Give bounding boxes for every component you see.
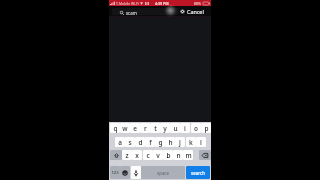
button[interactable]: Delete [199,150,211,160]
button[interactable]: Clear search [180,6,204,16]
staticText: p [204,124,209,133]
button[interactable]: x [132,150,142,160]
button[interactable]: i [180,123,190,133]
button[interactable]: Emoji [120,166,130,179]
button[interactable]: space [141,166,185,179]
staticText: i [184,124,186,133]
button[interactable]: m [183,150,193,160]
staticText: t [154,124,157,133]
staticText: e [133,124,137,133]
button[interactable]: scam [112,8,179,15]
button[interactable]: b [163,150,173,160]
staticText: q [113,124,118,133]
staticText: h [168,138,173,147]
button[interactable]: p [201,123,211,133]
staticText: w [122,124,128,133]
staticText: z [125,151,129,160]
button[interactable]: g [155,137,165,147]
button[interactable]: j [175,137,185,147]
button[interactable]: v [153,150,163,160]
staticText: y [163,124,167,133]
staticText: d [138,138,143,147]
staticText: search [191,170,205,176]
button[interactable]: t [150,123,160,133]
button[interactable]: h [165,137,175,147]
staticText: o [194,124,198,133]
staticText: j [179,138,181,147]
staticText: 88% [194,1,201,6]
button[interactable]: r [140,123,150,133]
staticText: r [144,124,147,133]
staticText: Cancel [187,8,204,15]
button[interactable]: e [130,123,140,133]
staticText: 4:39 PM [155,1,169,6]
staticText: b [166,151,171,160]
staticText: k [189,138,193,147]
staticText: T-Mobile Wi-Fi [116,1,140,6]
staticText: g [158,138,163,147]
staticText: x [135,151,139,160]
button[interactable]: y [160,123,170,133]
button[interactable]: Shift [110,150,122,160]
staticText: scam [126,10,137,15]
button[interactable]: a [115,137,125,147]
button[interactable]: c [143,150,153,160]
button[interactable]: q [110,123,120,133]
button[interactable]: 123 [110,166,120,179]
button[interactable]: n [173,150,183,160]
staticText: space [157,170,169,176]
button[interactable]: Voice input [131,166,141,179]
staticText: l [200,138,202,147]
staticText: u [173,124,178,133]
button[interactable]: u [170,123,180,133]
button[interactable]: w [120,123,130,133]
staticText: f [149,138,152,147]
button[interactable]: o [191,123,201,133]
staticText: a [118,138,122,147]
staticText: m [185,151,192,160]
button[interactable]: f [145,137,155,147]
other: Clear search [180,9,185,14]
button[interactable]: search [186,166,210,179]
staticText: c [146,151,150,160]
staticText: v [156,151,160,160]
button[interactable]: z [122,150,132,160]
button[interactable]: l [196,137,206,147]
staticText: 123 [111,170,119,176]
button[interactable]: d [135,137,145,147]
staticText: n [176,151,181,160]
staticText: s [128,138,132,147]
button[interactable]: k [186,137,196,147]
button[interactable]: s [125,137,135,147]
